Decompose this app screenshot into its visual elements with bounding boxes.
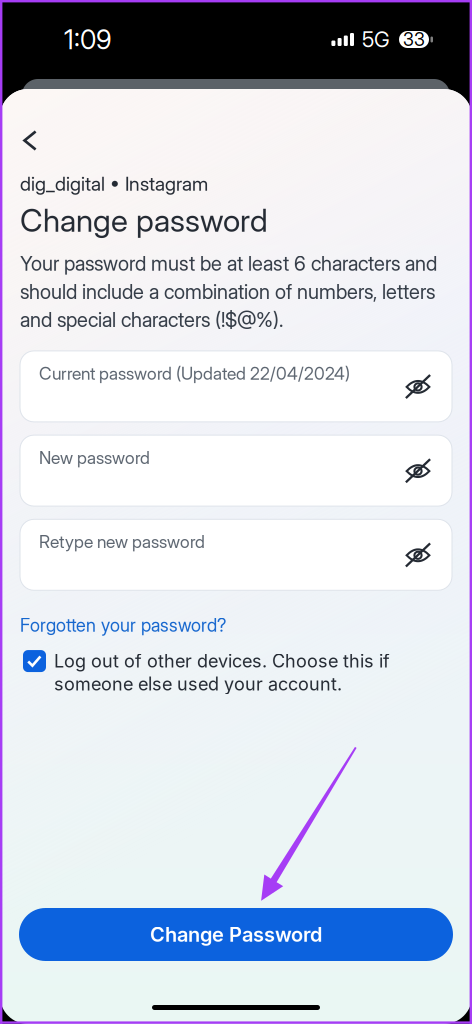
staticText: Current password (Updated 22/04/2024) — [39, 363, 350, 384]
button[interactable]: New password — [20, 435, 452, 506]
button[interactable]: Current password (Updated 22/04/2024) — [20, 351, 452, 422]
staticText: 5G — [362, 27, 390, 52]
button[interactable]: Retype new password — [20, 519, 452, 590]
staticText: Forgotten your password? — [20, 614, 226, 636]
button[interactable]: Back — [23, 130, 37, 151]
staticText: Change password — [20, 201, 268, 239]
staticText: Retype new password — [39, 531, 205, 552]
staticText: dig_digital • Instagram — [20, 172, 208, 195]
staticText: 1:09 — [64, 23, 112, 56]
staticText: Your password must be at least 6 charact… — [20, 251, 437, 332]
button[interactable]: Log out of other devices. Choose this if… — [0, 650, 399, 695]
staticText: Log out of other devices. Choose this if… — [54, 650, 390, 695]
button[interactable]: Forgotten your password? — [20, 614, 226, 636]
button[interactable]: Change Password — [19, 908, 453, 961]
staticText: 33 — [403, 29, 425, 50]
staticText: New password — [39, 447, 150, 468]
staticText: Change Password — [150, 922, 322, 947]
